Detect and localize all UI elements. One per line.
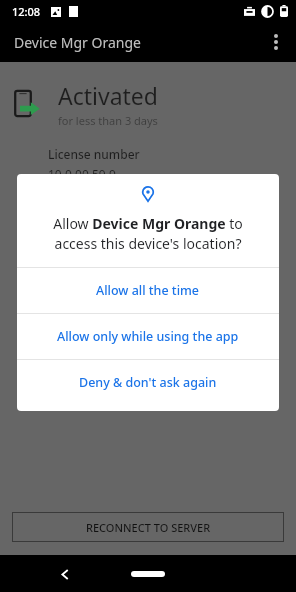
staticText: Allow Device Mgr Orange to access this d… [31,214,265,253]
staticText: Allow all the time [96,282,200,299]
button[interactable]: RECONNECT TO SERVER [12,512,284,542]
staticText: License number [48,146,140,162]
button[interactable]: More options [256,22,296,62]
staticText: 10.0.00.59.9 [48,166,116,182]
staticText: 12:08 [12,4,41,19]
staticText: Device Mgr Orange [14,33,141,52]
button[interactable]: Back [50,559,80,589]
staticText: for less than 3 days [58,113,158,128]
button[interactable]: Allow only while using the app [17,314,279,359]
staticText: Deny & don't ask again [79,374,217,391]
staticText: Allow only while using the app [57,328,239,345]
staticText: RECONNECT TO SERVER [86,520,211,535]
button[interactable]: Deny & don't ask again [17,360,279,405]
staticText: Activated [58,80,158,111]
button[interactable]: Home [126,564,170,584]
button[interactable]: Allow all the time [17,268,279,313]
